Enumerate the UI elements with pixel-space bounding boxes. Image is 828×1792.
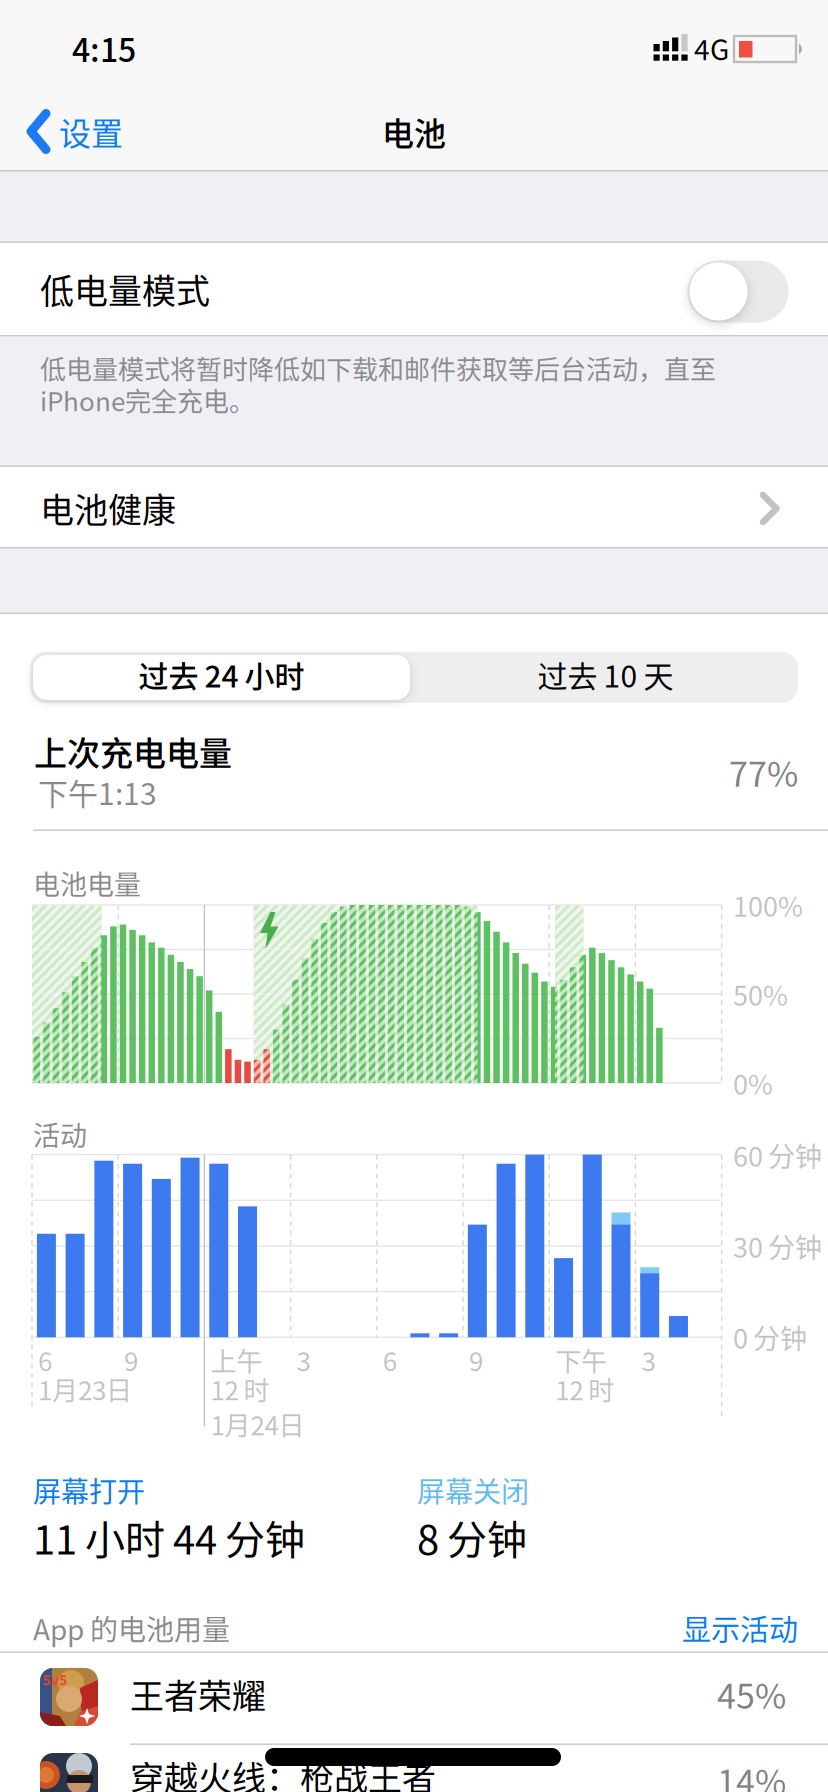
staticText: 4:15 <box>72 25 136 71</box>
staticText: 3 <box>641 1341 655 1379</box>
staticText: 12 时 <box>210 1370 269 1408</box>
staticText: 3 <box>297 1341 311 1379</box>
staticText: 60 分钟 <box>733 1135 822 1175</box>
staticText: 12 时 <box>555 1370 614 1408</box>
staticText: iPhone完全充电。 <box>40 381 255 419</box>
staticText: 过去 24 小时 <box>138 653 304 696</box>
staticText: 5v5 <box>43 1669 67 1689</box>
staticText: 设置 <box>59 108 123 155</box>
staticText: 11 小时 44 分钟 <box>33 1508 305 1566</box>
staticText: 9 <box>124 1341 138 1379</box>
staticText: 屏幕关闭 <box>417 1470 529 1510</box>
staticText: 1月23日 <box>38 1370 132 1408</box>
staticText: 6 <box>38 1341 52 1379</box>
staticText: 屏幕打开 <box>33 1470 145 1510</box>
staticText: 低电量模式将暂时降低如下载和邮件获取等后台活动，直至 <box>40 349 716 387</box>
staticText: 电池 <box>382 108 446 155</box>
staticText: 1月24日 <box>210 1405 304 1443</box>
staticText: 下午1:13 <box>38 770 157 814</box>
staticText: 王者荣耀 <box>130 1669 266 1719</box>
staticText: 上午 <box>210 1341 262 1379</box>
staticText: 过去 10 天 <box>537 653 673 696</box>
staticText: 100% <box>733 885 803 925</box>
button[interactable]: 低电量模式 <box>687 260 788 322</box>
staticText: 8 分钟 <box>417 1508 527 1566</box>
staticText: 穿越火线：枪战王者 <box>130 1751 436 1792</box>
staticText: 14% <box>717 1755 786 1792</box>
button[interactable]: 显示活动 <box>598 1596 798 1660</box>
staticText: 45% <box>717 1669 786 1719</box>
button[interactable]: 设置 <box>28 99 123 163</box>
button[interactable]: 过去 24 小时 <box>33 655 410 700</box>
staticText: 上次充电电量 <box>34 727 232 775</box>
staticText: 77% <box>729 747 798 797</box>
staticText: 30 分钟 <box>733 1226 822 1266</box>
staticText: App 的电池用量 <box>33 1608 230 1648</box>
staticText: 低电量模式 <box>40 264 210 314</box>
button[interactable]: 电池健康 <box>0 467 828 548</box>
staticText: 9 <box>469 1341 483 1379</box>
staticText: 电池健康 <box>40 483 176 533</box>
staticText: 0 分钟 <box>733 1317 807 1357</box>
staticText: 50% <box>733 974 788 1014</box>
staticText: 显示活动 <box>682 1607 798 1649</box>
staticText: 活动 <box>33 1114 87 1154</box>
staticText: 0% <box>733 1063 773 1103</box>
staticText: 4G <box>694 28 729 68</box>
button[interactable]: 过去 10 天 <box>413 655 798 700</box>
staticText: 下午 <box>555 1341 607 1379</box>
staticText: 6 <box>383 1341 397 1379</box>
staticText: 电池电量 <box>33 863 141 903</box>
